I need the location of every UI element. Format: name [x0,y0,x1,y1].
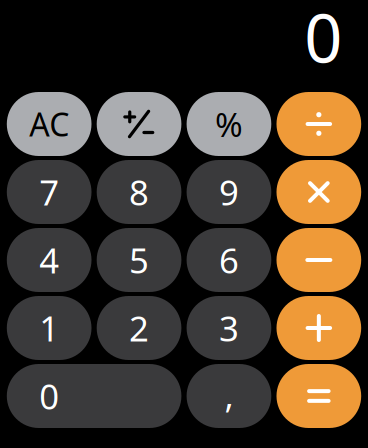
button[interactable]: 0 [7,364,181,428]
button[interactable]: % [187,92,271,156]
staticText: 0 [39,373,59,419]
staticText: , [224,372,233,418]
staticText: 4 [39,237,59,283]
staticText: 3 [219,305,239,351]
button[interactable]: AC [7,92,91,156]
staticText: 9 [219,169,239,215]
staticText: 2 [129,305,149,351]
button[interactable]: 1 [7,296,91,360]
button[interactable]: 8 [97,160,181,224]
staticText: 6 [219,237,239,283]
button[interactable]: 6 [187,228,271,292]
button[interactable]: 9 [187,160,271,224]
button[interactable]: 5 [97,228,181,292]
button[interactable]: Plus Minus [97,92,181,156]
button[interactable]: 3 [187,296,271,360]
button[interactable]: Add [276,296,361,360]
staticText: 1 [39,305,59,351]
button[interactable]: 2 [97,296,181,360]
staticText: 0 [304,0,342,81]
button[interactable]: 7 [7,160,91,224]
button[interactable]: 4 [7,228,91,292]
staticText: % [215,102,243,146]
button[interactable]: Multiply [276,160,361,224]
staticText: 5 [129,237,149,283]
button[interactable]: Equals [276,364,361,428]
button[interactable]: , [187,364,271,428]
staticText: 7 [39,169,59,215]
button[interactable]: Divide [276,92,361,156]
staticText: 8 [129,169,149,215]
button[interactable]: Subtract [276,228,361,292]
staticText: AC [29,103,69,145]
